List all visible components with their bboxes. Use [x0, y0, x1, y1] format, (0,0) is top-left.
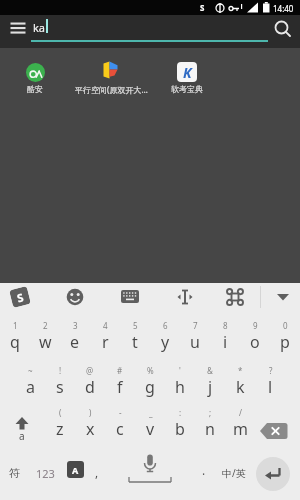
- button[interactable]: [276, 293, 290, 301]
- staticText: q: [10, 331, 20, 353]
- button[interactable]: [273, 19, 293, 39]
- staticText: *: [238, 365, 243, 376]
- staticText: 平行空间(原双开大…: [75, 84, 148, 95]
- staticText: s: [56, 376, 64, 398]
- staticText: /: [239, 407, 242, 418]
- staticText: a: [19, 429, 25, 442]
- staticText: ,: [95, 464, 99, 480]
- staticText: 8: [223, 320, 228, 331]
- button[interactable]: _: [135, 401, 165, 445]
- staticText: ': [179, 365, 181, 376]
- button[interactable]: [176, 289, 194, 305]
- button[interactable]: [101, 60, 121, 80]
- button[interactable]: K: [167, 52, 207, 92]
- button[interactable]: 7: [180, 314, 210, 358]
- button[interactable]: ': [165, 359, 195, 403]
- button[interactable]: 符: [1, 464, 27, 482]
- button[interactable]: 3: [60, 314, 90, 358]
- staticText: K: [183, 63, 192, 82]
- staticText: b: [175, 418, 185, 440]
- staticText: ka: [33, 20, 46, 35]
- staticText: (: [59, 407, 62, 418]
- staticText: a: [26, 376, 35, 398]
- staticText: h: [175, 376, 185, 398]
- staticText: f: [117, 376, 123, 398]
- staticText: c: [116, 418, 124, 440]
- button[interactable]: S: [9, 286, 31, 308]
- staticText: 4: [103, 320, 108, 331]
- staticText: S: [200, 2, 205, 13]
- button[interactable]: [15, 52, 55, 92]
- staticText: ;: [209, 407, 212, 418]
- staticText: 酷安: [27, 84, 43, 94]
- button[interactable]: 123: [30, 464, 60, 482]
- button[interactable]: ;: [195, 401, 225, 445]
- button[interactable]: 2: [30, 314, 60, 358]
- button[interactable]: @: [75, 359, 105, 403]
- staticText: 软考宝典: [171, 84, 203, 94]
- button[interactable]: 9: [240, 314, 270, 358]
- button[interactable]: ~: [15, 359, 45, 403]
- staticText: m: [233, 418, 248, 440]
- button[interactable]: [7, 404, 37, 448]
- button[interactable]: ?: [255, 359, 285, 403]
- staticText: &: [207, 365, 213, 376]
- staticText: v: [146, 418, 155, 440]
- button[interactable]: [226, 288, 244, 306]
- staticText: .: [202, 462, 206, 478]
- staticText: r: [102, 331, 109, 353]
- staticText: d: [85, 376, 95, 398]
- button[interactable]: 4: [90, 314, 120, 358]
- staticText: 14:40: [273, 3, 294, 14]
- staticText: ~: [28, 365, 33, 376]
- staticText: :: [179, 407, 182, 418]
- button[interactable]: -: [105, 401, 135, 445]
- button[interactable]: A: [67, 461, 84, 478]
- staticText: 0: [283, 320, 288, 331]
- button[interactable]: [120, 453, 180, 485]
- button[interactable]: 1: [0, 314, 30, 358]
- staticText: u: [190, 331, 200, 353]
- staticText: e: [70, 331, 80, 353]
- button[interactable]: 6: [150, 314, 180, 358]
- staticText: -: [119, 407, 122, 418]
- button[interactable]: [256, 457, 290, 491]
- button[interactable]: /: [225, 401, 255, 445]
- staticText: n: [205, 418, 215, 440]
- button[interactable]: #: [105, 359, 135, 403]
- staticText: i: [223, 331, 228, 353]
- button[interactable]: ): [75, 401, 105, 445]
- staticText: 符: [9, 466, 20, 480]
- button[interactable]: 0: [270, 314, 300, 358]
- staticText: y: [161, 331, 170, 353]
- staticText: 中/英: [222, 466, 246, 480]
- staticText: w: [39, 331, 52, 353]
- staticText: 6: [163, 320, 168, 331]
- staticText: j: [208, 376, 213, 398]
- button[interactable]: 中/英: [216, 465, 252, 481]
- button[interactable]: [121, 290, 139, 304]
- staticText: %: [147, 365, 154, 376]
- button[interactable]: (: [45, 401, 75, 445]
- button[interactable]: 5: [120, 314, 150, 358]
- staticText: A: [72, 464, 79, 476]
- staticText: @: [86, 365, 94, 376]
- button[interactable]: :: [165, 401, 195, 445]
- staticText: #: [117, 365, 123, 376]
- staticText: 1: [13, 320, 18, 331]
- button[interactable]: 8: [210, 314, 240, 358]
- staticText: !: [59, 365, 62, 376]
- button[interactable]: !: [45, 359, 75, 403]
- staticText: x: [86, 418, 95, 440]
- button[interactable]: [259, 422, 291, 441]
- staticText: 123: [36, 466, 55, 481]
- button[interactable]: %: [135, 359, 165, 403]
- button[interactable]: [66, 288, 84, 306]
- staticText: l: [268, 376, 273, 398]
- button[interactable]: &: [195, 359, 225, 403]
- staticText: 3: [73, 320, 78, 331]
- button[interactable]: [0, 15, 300, 48]
- staticText: _: [149, 407, 153, 418]
- button[interactable]: *: [225, 359, 255, 403]
- staticText: t: [132, 331, 138, 353]
